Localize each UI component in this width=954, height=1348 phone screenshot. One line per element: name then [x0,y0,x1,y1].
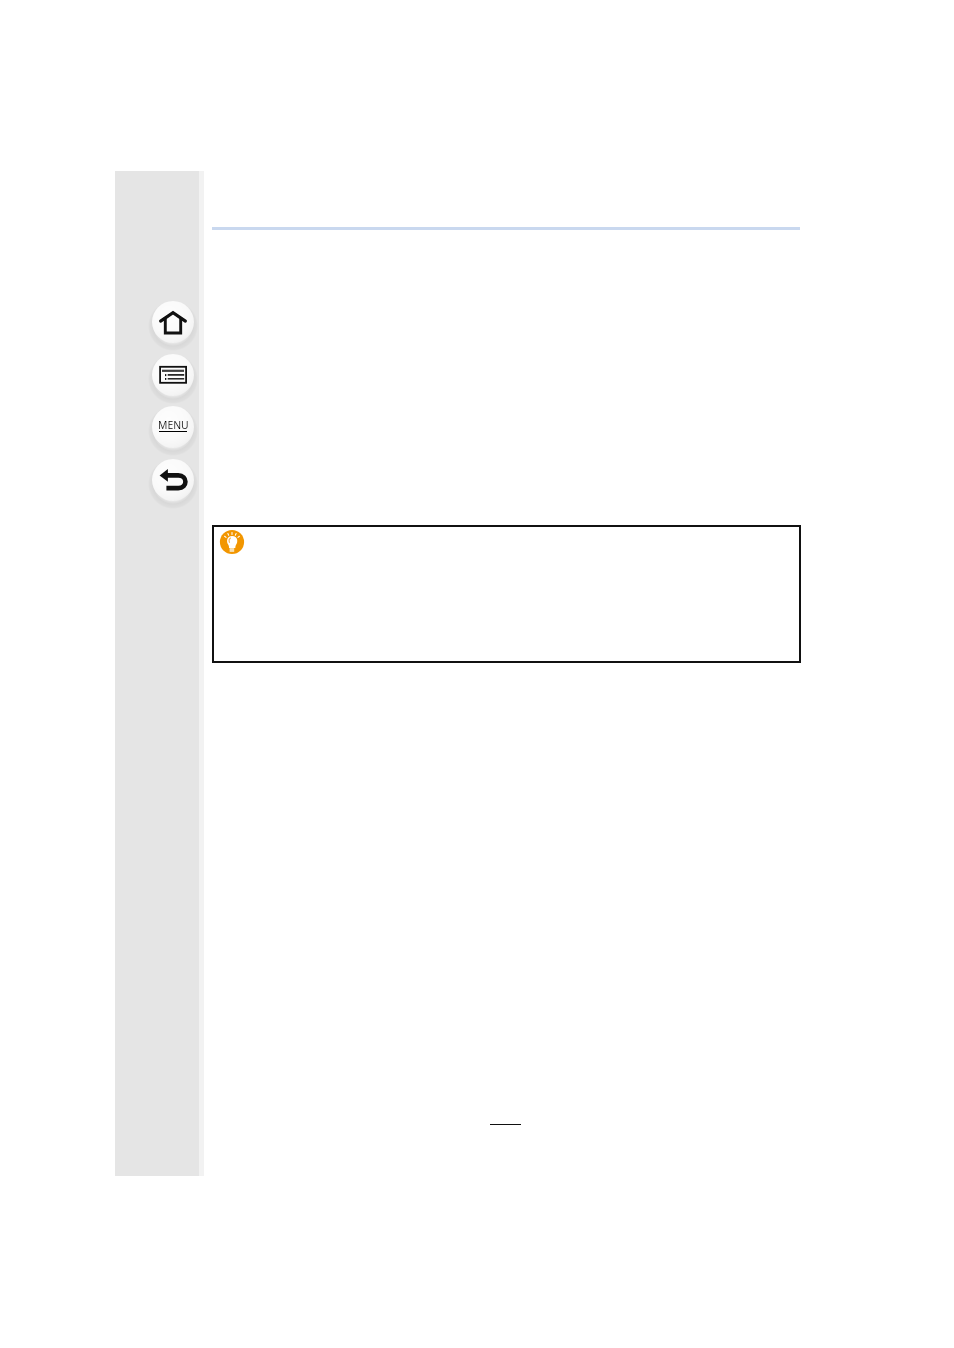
button[interactable]: Back [152,459,194,501]
staticText: MENU [158,418,189,432]
button[interactable]: Home [152,301,194,343]
button[interactable]: Menu [152,406,194,448]
button[interactable]: Contents [152,354,194,396]
